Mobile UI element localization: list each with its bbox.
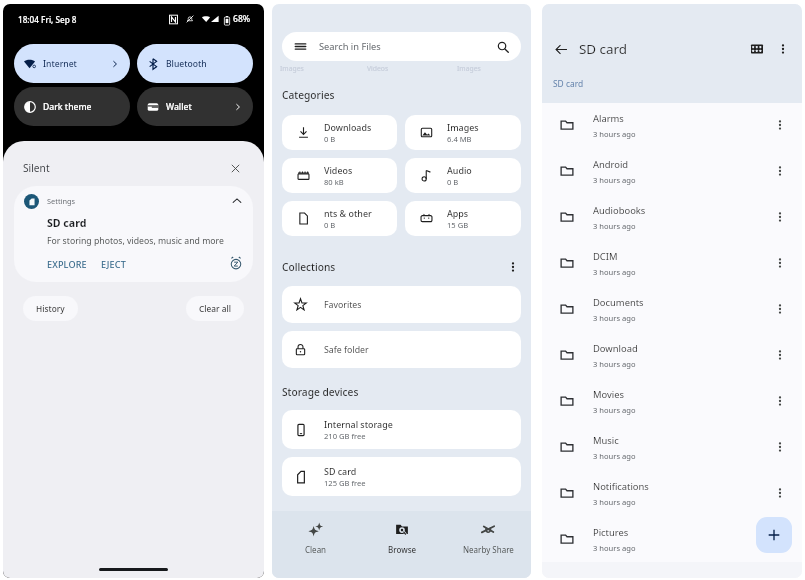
staticText: For storing photos, videos, music and mo… <box>47 235 224 247</box>
button[interactable]: EJECT <box>99 253 128 275</box>
button[interactable]: Pictures <box>542 516 802 562</box>
button[interactable]: Audiobooks <box>542 194 802 240</box>
staticText: 0 B <box>447 177 459 187</box>
staticText: Audio <box>447 164 472 176</box>
staticText: 3 hours ago <box>593 405 636 415</box>
staticText: History <box>36 303 65 314</box>
button[interactable]: Favorites <box>282 286 521 323</box>
button[interactable]: Images <box>405 115 521 150</box>
button[interactable]: DCIM <box>542 240 802 286</box>
staticText: Wallet <box>166 101 192 113</box>
button[interactable]: Snooze <box>227 254 245 272</box>
staticText: Internal storage <box>324 418 393 430</box>
button[interactable]: Music <box>542 424 802 470</box>
button[interactable]: Back <box>550 38 572 60</box>
button[interactable]: Videos <box>282 158 397 193</box>
button[interactable]: More options for Pictures <box>769 528 791 550</box>
staticText: 3 hours ago <box>593 313 636 323</box>
button[interactable]: Clean <box>272 511 359 578</box>
button[interactable]: Internal storage <box>282 410 521 449</box>
staticText: Storage devices <box>282 385 359 399</box>
button[interactable]: More options for DCIM <box>769 252 791 274</box>
button[interactable]: Search in Files <box>282 32 521 61</box>
staticText: Videos <box>367 64 389 73</box>
staticText: 3 hours ago <box>593 543 636 553</box>
button[interactable]: More options for Audiobooks <box>769 206 791 228</box>
button[interactable]: More options <box>505 259 521 275</box>
button[interactable]: Android <box>542 148 802 194</box>
button[interactable]: Clear all <box>186 296 244 321</box>
staticText: Videos <box>324 164 353 176</box>
button[interactable]: More options for Movies <box>769 390 791 412</box>
button[interactable]: Audio <box>405 158 521 193</box>
button[interactable]: Downloads <box>282 115 397 150</box>
staticText: EXPLORE <box>47 258 87 270</box>
staticText: Search in Files <box>319 40 381 53</box>
button[interactable]: More options for Documents <box>769 298 791 320</box>
button[interactable]: nts & other <box>282 201 397 236</box>
button[interactable]: Alarms <box>542 102 802 148</box>
button[interactable]: SD card <box>282 457 521 496</box>
button[interactable]: Movies <box>542 378 802 424</box>
staticText: Apps <box>447 207 469 219</box>
staticText: Pictures <box>593 526 629 539</box>
button[interactable]: Nearby Share <box>445 511 531 578</box>
staticText: 68% <box>233 13 251 25</box>
staticText: SD card <box>324 465 357 477</box>
button[interactable]: Wallet <box>137 87 253 126</box>
staticText: DCIM <box>593 250 618 263</box>
staticText: Favorites <box>324 299 362 311</box>
button[interactable]: More options for Notifications <box>769 482 791 504</box>
button[interactable]: Grid view <box>746 38 768 60</box>
button[interactable]: Collapse <box>228 192 246 210</box>
staticText: 210 GB free <box>324 431 366 441</box>
staticText: Internet <box>43 58 77 70</box>
staticText: Download <box>593 342 638 355</box>
button[interactable]: Settings <box>14 186 253 282</box>
button[interactable]: Create <box>756 517 792 553</box>
staticText: Images <box>457 64 481 73</box>
staticText: Notifications <box>593 480 649 493</box>
staticText: Android <box>593 158 629 171</box>
staticText: Downloads <box>324 121 372 133</box>
button[interactable]: Download <box>542 332 802 378</box>
staticText: Collections <box>282 260 336 274</box>
staticText: SD card <box>579 40 628 58</box>
staticText: Images <box>280 64 304 73</box>
staticText: SD card <box>47 216 87 230</box>
staticText: Nearby Share <box>463 544 514 555</box>
button[interactable]: More options for Android <box>769 160 791 182</box>
staticText: Clear all <box>199 303 231 314</box>
staticText: 0 B <box>324 220 336 230</box>
staticText: nts & other <box>324 207 372 219</box>
button[interactable]: Dismiss <box>226 159 244 177</box>
button[interactable]: Internet <box>14 44 130 83</box>
staticText: 6.4 MB <box>447 134 472 144</box>
button[interactable]: Browse <box>359 511 445 578</box>
staticText: Bluetooth <box>166 58 207 70</box>
staticText: 3 hours ago <box>593 221 636 231</box>
button[interactable]: More options for Download <box>769 344 791 366</box>
staticText: Clean <box>305 544 327 555</box>
button[interactable]: More options for Music <box>769 436 791 458</box>
staticText: Categories <box>282 88 335 102</box>
button[interactable]: Apps <box>405 201 521 236</box>
button[interactable]: More options <box>772 38 794 60</box>
staticText: 3 hours ago <box>593 497 636 507</box>
staticText: Documents <box>593 296 644 309</box>
staticText: 3 hours ago <box>593 129 636 139</box>
staticText: 3 hours ago <box>593 175 636 185</box>
staticText: EJECT <box>101 258 126 270</box>
staticText: Browse <box>388 544 417 555</box>
staticText: Audiobooks <box>593 204 646 217</box>
button[interactable]: EXPLORE <box>45 253 89 275</box>
button[interactable]: Dark theme <box>14 87 130 126</box>
button[interactable]: More options for Alarms <box>769 114 791 136</box>
staticText: 3 hours ago <box>593 359 636 369</box>
button[interactable]: Notifications <box>542 470 802 516</box>
button[interactable]: Safe folder <box>282 331 521 368</box>
button[interactable]: Documents <box>542 286 802 332</box>
button[interactable]: History <box>23 296 78 321</box>
button[interactable]: Bluetooth <box>137 44 253 83</box>
staticText: 3 hours ago <box>593 451 636 461</box>
